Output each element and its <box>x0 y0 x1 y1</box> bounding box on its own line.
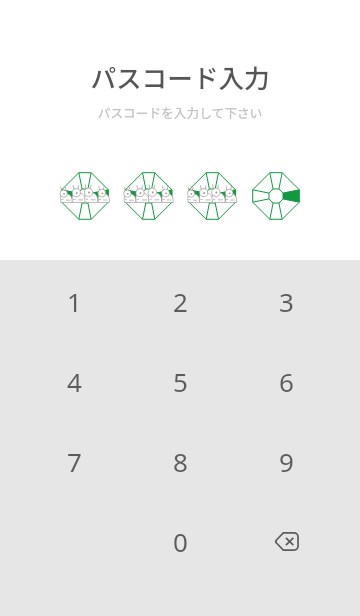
button[interactable]: 5 <box>127 341 233 421</box>
staticText: 7 <box>67 444 82 479</box>
staticText: 5 <box>173 364 188 399</box>
button[interactable]: 9 <box>233 421 339 501</box>
button[interactable]: 8 <box>127 421 233 501</box>
staticText: 0 <box>173 524 188 559</box>
staticText: パスコード入力 <box>0 58 360 95</box>
staticText: 4 <box>67 364 82 399</box>
button[interactable]: 2 <box>127 261 233 341</box>
button[interactable]: 7 <box>21 421 127 501</box>
staticText: 2 <box>173 284 188 319</box>
button[interactable]: 0 <box>127 501 233 581</box>
staticText: パスコードを入力して下さい <box>0 103 360 121</box>
button[interactable]: 1 <box>21 261 127 341</box>
staticText: 1 <box>67 284 82 319</box>
staticText: 9 <box>279 444 294 479</box>
staticText: 3 <box>279 284 294 319</box>
staticText: 8 <box>173 444 188 479</box>
other: Backspace <box>233 501 339 581</box>
button[interactable]: Backspace <box>233 501 339 581</box>
button[interactable]: 6 <box>233 341 339 421</box>
button[interactable]: 3 <box>233 261 339 341</box>
staticText: 6 <box>279 364 294 399</box>
button[interactable]: 4 <box>21 341 127 421</box>
